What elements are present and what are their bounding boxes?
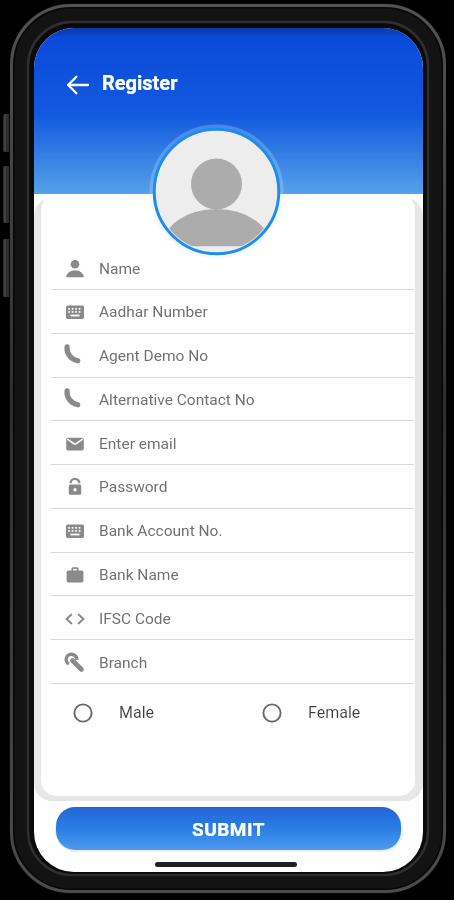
button[interactable]: Male [61, 696, 231, 729]
staticText: Bank Name [99, 566, 179, 584]
staticText: Branch [99, 654, 148, 672]
staticText: SUBMIT [192, 818, 265, 840]
staticText: Bank Account No. [99, 522, 223, 540]
button[interactable]: Password [41, 465, 415, 509]
button[interactable]: SUBMIT [56, 807, 401, 850]
button[interactable]: Branch [41, 641, 415, 685]
button[interactable]: IFSC Code [41, 597, 415, 641]
staticText: Aadhar Number [99, 303, 208, 321]
button[interactable]: Female [251, 696, 415, 729]
button[interactable]: Bank Name [41, 553, 415, 597]
staticText: Alternative Contact No [99, 391, 255, 409]
button[interactable]: Bank Account No. [41, 509, 415, 553]
button[interactable]: Name [41, 247, 415, 291]
button[interactable] [58, 65, 98, 105]
staticText: IFSC Code [99, 610, 171, 628]
button[interactable]: Aadhar Number [41, 290, 415, 334]
staticText: Male [119, 703, 155, 722]
button[interactable]: Agent Demo No [41, 334, 415, 378]
staticText: Register [102, 71, 178, 94]
staticText: Enter email [99, 435, 177, 453]
staticText: Password [99, 478, 168, 496]
button[interactable] [153, 128, 280, 255]
staticText: Agent Demo No [99, 347, 209, 365]
staticText: Name [99, 260, 141, 278]
staticText: Female [308, 703, 361, 722]
button[interactable]: Enter email [41, 422, 415, 466]
button[interactable]: Alternative Contact No [41, 378, 415, 422]
